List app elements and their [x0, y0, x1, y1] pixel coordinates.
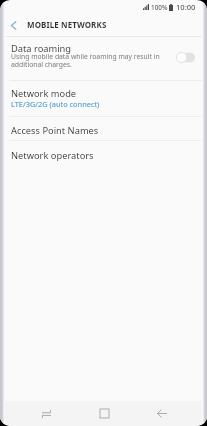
button[interactable]: Network mode — [0, 80, 207, 116]
staticText: Using mobile data while roaming may resu… — [11, 52, 160, 69]
button[interactable]: Navigate up — [0, 15, 27, 36]
button[interactable]: Back — [149, 401, 175, 426]
staticText: Network mode — [11, 87, 77, 100]
staticText: 10:00 — [176, 2, 196, 12]
staticText: Access Point Names — [11, 124, 99, 137]
staticText: Network operators — [11, 149, 94, 162]
button[interactable]: Data roaming — [0, 36, 207, 80]
staticText: Data roaming — [11, 42, 72, 55]
staticText: LTE/3G/2G (auto connect) — [11, 99, 100, 109]
button[interactable]: Network operators — [0, 140, 207, 164]
button[interactable]: Access Point Names — [0, 116, 207, 140]
button[interactable]: Home — [91, 401, 117, 426]
button[interactable]: Recent apps — [33, 401, 59, 426]
staticText: MOBILE NETWORKS — [27, 19, 107, 30]
staticText: 100% — [151, 3, 168, 12]
